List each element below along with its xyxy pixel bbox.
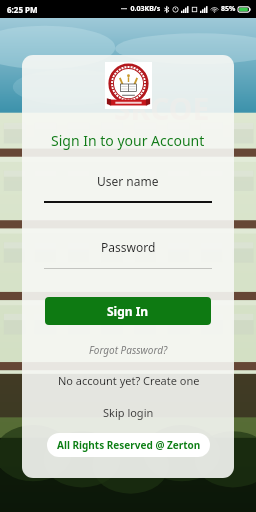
staticText: Sign In to your Account <box>51 131 205 150</box>
staticText: 85% <box>221 4 236 14</box>
button[interactable]: All Rights Reserved @ Zerton <box>47 433 210 457</box>
staticText: Skip login <box>103 405 154 420</box>
staticText: Password <box>101 239 156 255</box>
button[interactable]: Password <box>44 239 212 269</box>
staticText: Forgot Password? <box>89 343 168 357</box>
staticText: All Rights Reserved @ Zerton <box>57 438 201 452</box>
staticText: SRCOE <box>114 88 210 129</box>
staticText: ··· 0.03KB/s <box>121 4 161 14</box>
button[interactable]: Skip login <box>73 402 183 422</box>
staticText: User name <box>97 173 159 189</box>
button[interactable]: Sign In <box>45 297 211 325</box>
button[interactable]: Forgot Password? <box>68 341 188 359</box>
button[interactable]: User name <box>44 173 212 203</box>
staticText: Sign In <box>107 303 149 319</box>
button[interactable]: No account yet? Create one <box>41 370 216 390</box>
staticText: No account yet? Create one <box>58 373 200 388</box>
staticText: 6:25 PM <box>7 4 38 15</box>
